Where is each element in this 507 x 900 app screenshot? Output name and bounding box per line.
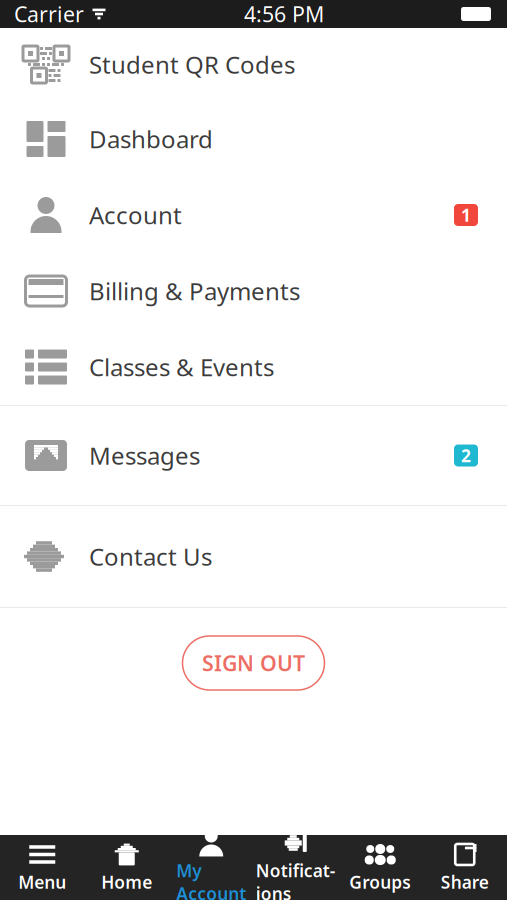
staticText: Dashboard	[89, 123, 213, 155]
button[interactable]: Menu	[0, 836, 84, 898]
button[interactable]: SIGN OUT	[182, 636, 324, 690]
button[interactable]: Student QR Codes	[0, 28, 507, 101]
staticText: Notifications	[256, 859, 336, 900]
button[interactable]: Billing & Payments	[0, 253, 507, 329]
staticText: My Account	[176, 859, 246, 900]
staticText: Student QR Codes	[89, 49, 295, 80]
staticText: 2	[461, 444, 471, 467]
staticText: SIGN OUT	[202, 649, 305, 677]
staticText: Account	[89, 199, 182, 231]
staticText: Messages	[89, 440, 200, 471]
staticText: Billing & Payments	[89, 275, 300, 307]
button[interactable]: Dashboard	[0, 101, 507, 177]
staticText: Classes & Events	[89, 351, 274, 383]
button[interactable]: Home	[84, 836, 169, 898]
staticText: Contact Us	[89, 541, 212, 572]
button[interactable]: My Account	[169, 836, 253, 898]
staticText: Menu	[18, 870, 66, 893]
staticText: 4:56 PM	[244, 0, 324, 28]
button[interactable]: Groups	[338, 836, 422, 898]
button[interactable]: Share	[422, 836, 507, 898]
staticText: 1	[461, 203, 471, 226]
staticText: Carrier	[14, 0, 84, 28]
button[interactable]: Notifications	[253, 836, 338, 898]
staticText: Groups	[349, 870, 411, 893]
staticText: Share	[441, 870, 489, 893]
button[interactable]: Contact Us	[0, 506, 507, 607]
button[interactable]: Account	[0, 177, 507, 253]
staticText: Home	[101, 870, 152, 893]
button[interactable]: Messages	[0, 406, 507, 505]
button[interactable]: Classes & Events	[0, 329, 507, 405]
